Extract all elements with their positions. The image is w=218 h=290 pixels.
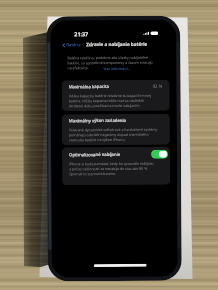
- button[interactable]: Optimalizované nabíjanie: [62, 147, 170, 185]
- staticText: 21:37: [74, 30, 88, 37]
- staticText: Vstavané dynamické softvérové a hardvéro…: [69, 127, 158, 142]
- staticText: Maximálna kapacita: [69, 83, 110, 89]
- staticText: Batéria telefónu, podobne ako všetky nab…: [67, 55, 153, 70]
- staticText: iPhone si bude pamätať, kedy ho spravidl…: [69, 161, 154, 176]
- staticText: Maximálny výkon zariadenia: [69, 117, 127, 123]
- staticText: Udáva kapacitu batérie relatívne ku kapa…: [69, 93, 152, 108]
- button[interactable]: Viac informácií...: [103, 66, 130, 71]
- button[interactable]: Optimalizované nabíjanie: [151, 150, 168, 159]
- staticText: 92 %: [153, 83, 163, 89]
- button[interactable]: Batéria: [62, 42, 81, 48]
- staticText: Batéria: [66, 42, 81, 48]
- button[interactable]: Maximálna kapacita: [62, 80, 170, 111]
- staticText: Zdravie a nabíjanie batérie: [86, 41, 147, 47]
- button[interactable]: Maximálny výkon zariadenia: [62, 114, 170, 145]
- staticText: Optimalizované nabíjanie: [69, 151, 121, 157]
